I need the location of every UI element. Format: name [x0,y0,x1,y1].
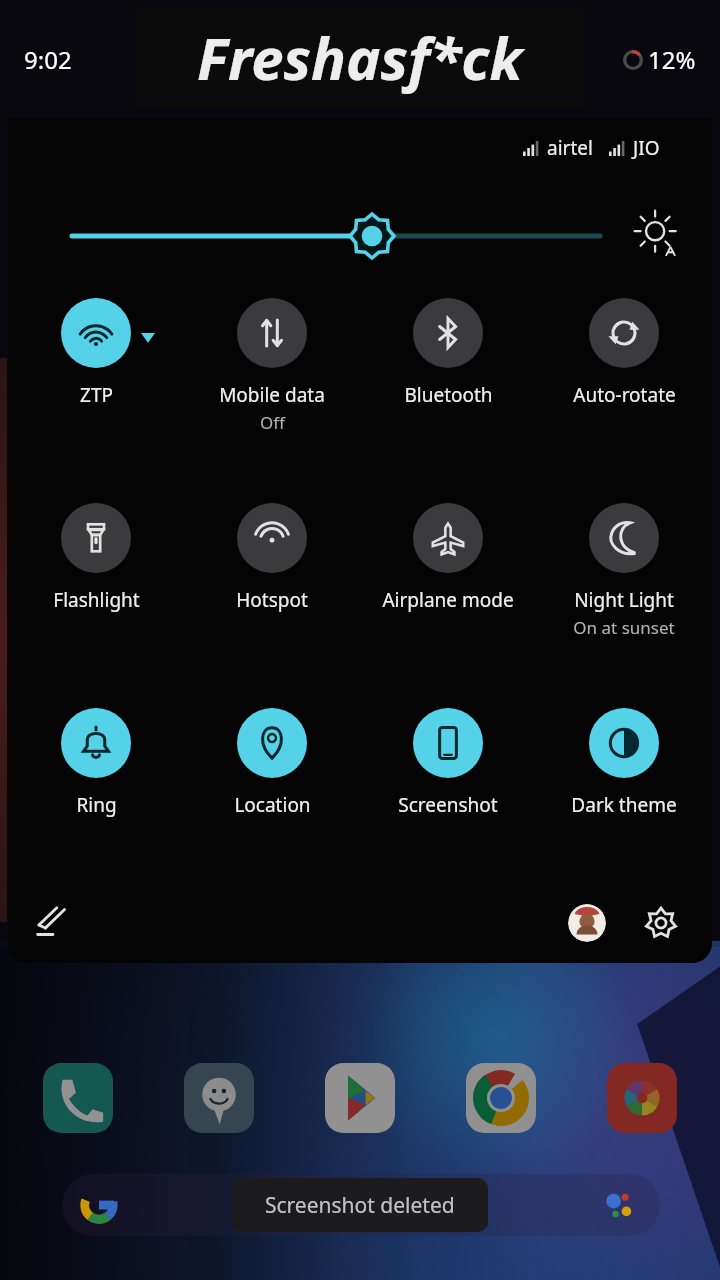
staticText: Auto-rotate [573,382,676,408]
staticText: Screenshot [398,792,498,818]
staticText: Ring [76,792,117,818]
staticText: Bluetooth [404,382,493,408]
staticText: Freshasf*ck [197,18,523,97]
staticText: airtel [547,135,593,161]
button[interactable]: Dark theme [536,698,712,903]
staticText: JIO [633,135,660,161]
staticText: Night Light [574,587,674,613]
staticText: 9:02 [24,43,72,76]
button[interactable]: Brightness slider [8,200,712,272]
button[interactable]: msg [179,1058,259,1138]
button[interactable]: ZTP [8,288,184,493]
button[interactable]: Flashlight [8,493,184,698]
staticText: ZTP [80,382,113,408]
button[interactable]: Ring [8,698,184,903]
staticText: Off [260,411,285,434]
staticText: On at sunset [573,616,675,639]
button[interactable]: Night Light [536,493,712,698]
staticText: Airplane mode [382,587,514,613]
staticText: 12% [648,43,696,76]
button[interactable]: Location [184,698,360,903]
button[interactable]: Edit tiles [30,900,76,946]
button[interactable]: Search [62,1174,660,1236]
staticText: Flashlight [53,587,140,613]
button[interactable]: Hotspot [184,493,360,698]
button[interactable]: Settings [638,900,684,946]
button[interactable]: cam [602,1058,682,1138]
button[interactable]: Screenshot [360,698,536,903]
staticText: Location [234,792,311,818]
staticText: Hotspot [236,587,308,613]
staticText: Dark theme [571,792,677,818]
staticText: Screenshot deleted [265,1191,455,1220]
button[interactable]: Auto-rotate [536,288,712,493]
button[interactable]: Bluetooth [360,288,536,493]
button[interactable]: chrome [461,1058,541,1138]
button[interactable]: Airplane mode [360,493,536,698]
button[interactable]: play [320,1058,400,1138]
button[interactable]: phone [38,1058,118,1138]
button[interactable]: Mobile data [184,288,360,493]
staticText: Mobile data [219,382,325,408]
button[interactable]: User account [568,904,606,942]
button[interactable]: Auto brightness [634,212,682,260]
